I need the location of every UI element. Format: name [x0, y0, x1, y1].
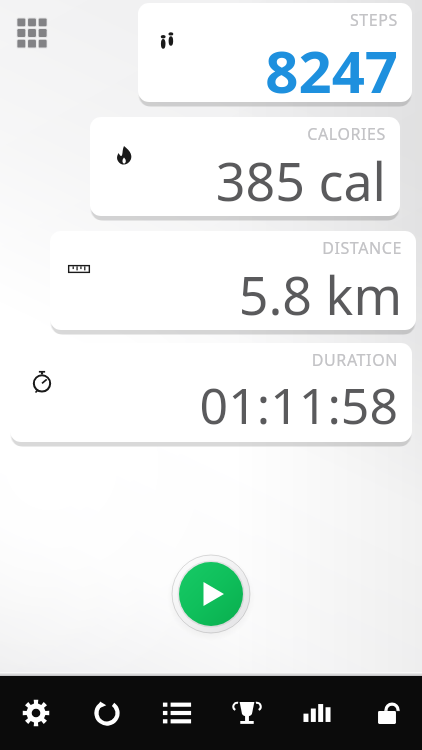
button[interactable]: STEPS — [138, 3, 412, 105]
button[interactable]: Statistics — [282, 676, 352, 750]
button[interactable]: CALORIES — [90, 117, 400, 219]
staticText: DURATION — [311, 349, 398, 371]
staticText: STEPS — [349, 9, 398, 31]
button[interactable]: Start workout — [170, 553, 252, 635]
staticText: 01:11:58 — [199, 371, 398, 439]
staticText: 5.8 km — [238, 259, 402, 330]
button[interactable]: Reset — [71, 676, 142, 750]
button[interactable]: Apps grid — [8, 9, 56, 57]
button[interactable]: Settings — [0, 676, 71, 750]
staticText: CALORIES — [307, 123, 386, 145]
button[interactable]: Achievements — [212, 676, 282, 750]
button[interactable]: History list — [142, 676, 212, 750]
button[interactable]: DISTANCE — [50, 231, 416, 333]
staticText: DISTANCE — [322, 237, 402, 259]
button[interactable]: DURATION — [10, 343, 412, 445]
staticText: 8247 — [265, 31, 398, 102]
button[interactable]: Lock — [352, 676, 422, 750]
staticText: 385 cal — [215, 145, 386, 216]
